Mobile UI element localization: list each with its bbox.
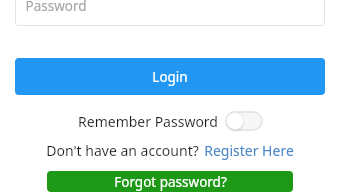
- staticText: Forgot password?: [114, 173, 227, 191]
- button[interactable]: Login: [15, 58, 325, 95]
- button[interactable]: Remember Password: [78, 111, 263, 131]
- staticText: Don't have an account?: [46, 141, 199, 160]
- button[interactable]: Password: [15, 0, 325, 26]
- button[interactable]: Register Here: [204, 141, 294, 160]
- staticText: Register Here: [204, 141, 294, 160]
- staticText: Login: [152, 68, 188, 86]
- staticText: Remember Password: [78, 112, 218, 131]
- button[interactable]: Remember Password toggle, off: [225, 111, 263, 131]
- button[interactable]: Forgot password?: [47, 171, 293, 192]
- staticText: Password: [25, 0, 87, 15]
